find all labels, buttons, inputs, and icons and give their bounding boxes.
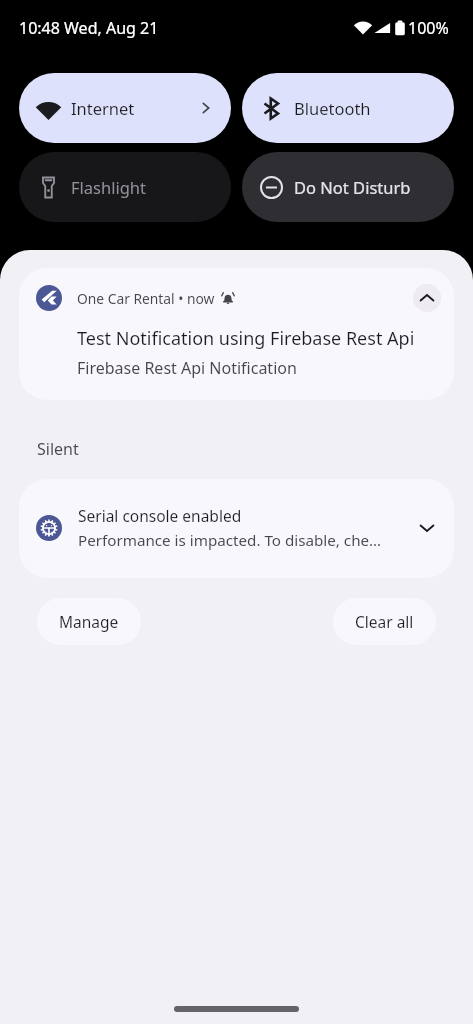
staticText: Manage	[59, 611, 119, 632]
staticText: One Car Rental • now	[77, 289, 215, 308]
button[interactable]: Expand	[413, 514, 441, 542]
button[interactable]: Manage	[37, 598, 141, 645]
button[interactable]: Bluetooth	[242, 73, 454, 143]
staticText: Silent	[37, 438, 79, 460]
staticText: 100%	[408, 17, 449, 39]
staticText: Clear all	[355, 611, 414, 632]
button[interactable]: Flashlight	[19, 152, 231, 222]
staticText: Performance is impacted. To disable, che…	[78, 530, 382, 551]
button[interactable]: Collapse	[413, 284, 441, 312]
staticText: Firebase Rest Api Notification	[77, 357, 297, 379]
staticText: Internet	[71, 97, 135, 119]
staticText: Flashlight	[71, 176, 146, 198]
button[interactable]: Internet	[19, 73, 231, 143]
staticText: Serial console enabled	[78, 505, 242, 526]
staticText: Test Notification using Firebase Rest Ap…	[77, 326, 415, 351]
button[interactable]: Clear all	[333, 598, 436, 645]
button[interactable]: One Car Rental • now	[19, 268, 454, 400]
staticText: 10:48 Wed, Aug 21	[19, 17, 159, 39]
staticText: Bluetooth	[294, 97, 371, 119]
button[interactable]: Do Not Disturb	[242, 152, 454, 222]
staticText: Do Not Disturb	[294, 176, 411, 198]
button[interactable]: Serial console enabled	[19, 479, 454, 578]
